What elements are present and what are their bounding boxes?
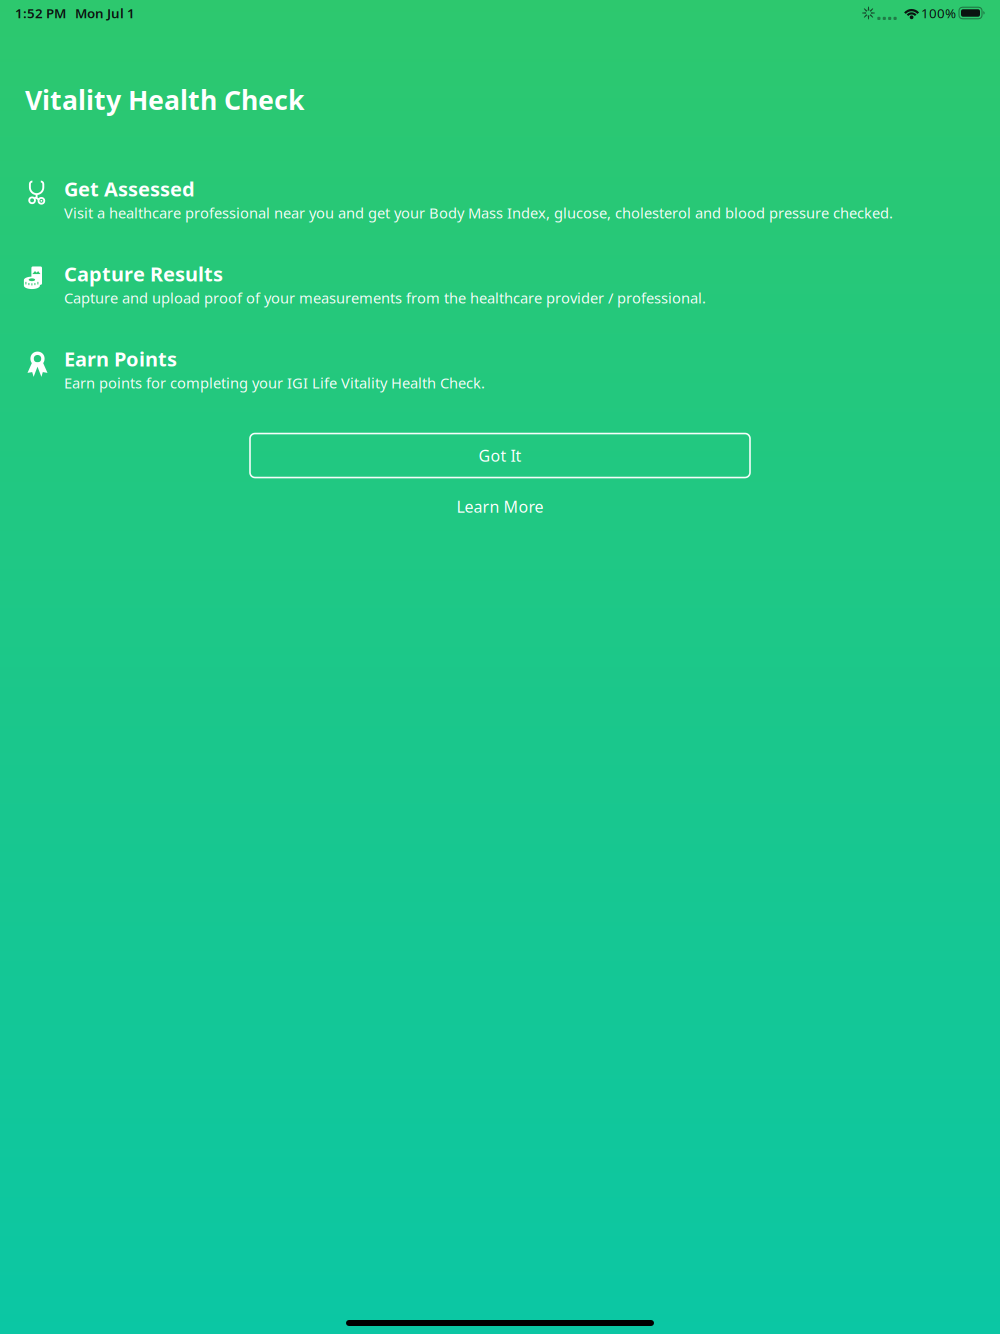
staticText: Capture and upload proof of your measure… — [64, 288, 706, 307]
staticText: Get Assessed — [64, 175, 195, 202]
staticText: Capture Results — [64, 260, 223, 287]
staticText: Earn Points — [64, 345, 177, 372]
staticText: Earn points for completing your IGI Life… — [64, 373, 485, 392]
staticText: Vitality Health Check — [25, 82, 305, 117]
staticText: 1:52 PM — [15, 4, 66, 22]
staticText: Visit a healthcare professional near you… — [64, 203, 893, 222]
button[interactable]: Learn More — [436, 488, 563, 524]
staticText: 100% — [921, 4, 956, 22]
staticText: Mon Jul 1 — [75, 4, 135, 22]
staticText: Learn More — [456, 496, 543, 517]
button[interactable]: Got It — [250, 433, 750, 477]
staticText: Got It — [478, 445, 521, 466]
